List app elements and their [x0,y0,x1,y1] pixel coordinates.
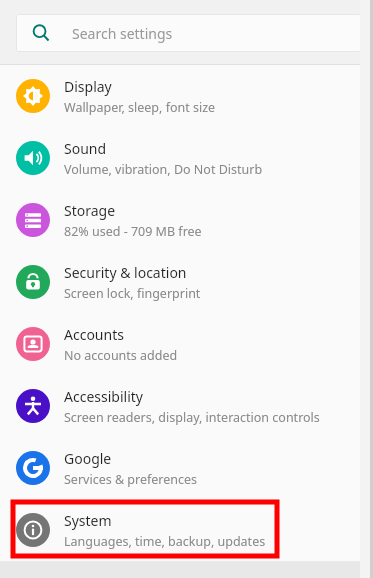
staticText: System [64,511,112,530]
staticText: Languages, time, backup, updates [64,533,266,550]
staticText: 82% used - 709 MB free [64,223,202,240]
staticText: No accounts added [64,347,178,364]
button[interactable]: System [0,499,373,561]
staticText: Services & preferences [64,471,198,488]
staticText: Accounts [64,325,124,344]
staticText: Screen readers, display, interaction con… [64,409,320,426]
button[interactable]: Search settings [16,14,361,52]
staticText: Storage [64,201,116,220]
staticText: Google [64,449,112,468]
button[interactable]: Security & location [0,251,373,313]
staticText: Accessibility [64,387,143,406]
button[interactable]: Display [0,65,373,127]
button[interactable]: Sound [0,127,373,189]
button[interactable]: Google [0,437,373,499]
staticText: Display [64,77,112,96]
button[interactable]: Accounts [0,313,373,375]
staticText: Screen lock, fingerprint [64,285,201,302]
button[interactable]: Accessibility [0,375,373,437]
staticText: Sound [64,139,107,158]
staticText: Wallpaper, sleep, font size [64,99,216,116]
staticText: Volume, vibration, Do Not Disturb [64,161,263,178]
button[interactable]: Storage [0,189,373,251]
staticText: Security & location [64,263,187,282]
staticText: Search settings [72,24,173,43]
